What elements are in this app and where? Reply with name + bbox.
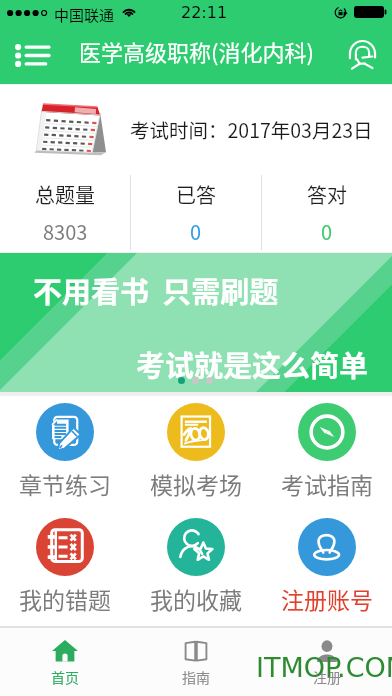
staticText: 我的错题 xyxy=(19,582,111,615)
staticText: 已答 xyxy=(176,180,216,209)
button[interactable]: 考试时间：2017年03月23日 xyxy=(0,85,392,173)
button[interactable]: 注册账号 xyxy=(261,511,392,626)
staticText: 不用看书 只需刷题 xyxy=(33,269,279,311)
staticText: 首页 xyxy=(51,667,79,687)
staticText: 模拟考场 xyxy=(150,467,242,500)
staticText: 我的收藏 xyxy=(150,582,242,615)
button[interactable]: 答对 xyxy=(262,173,392,252)
button[interactable]: 首页 xyxy=(0,628,130,696)
staticText: 总题量 xyxy=(35,180,95,209)
staticText: 答对 xyxy=(307,180,347,209)
staticText: 考试指南 xyxy=(281,467,373,500)
staticText: 8303 xyxy=(43,217,88,246)
staticText: 22:11 xyxy=(181,3,228,22)
button[interactable]: 指南 xyxy=(130,628,261,696)
button[interactable]: 注册 xyxy=(261,628,392,696)
staticText: 医学高级职称(消化内科) xyxy=(79,35,314,67)
button[interactable]: Menu xyxy=(8,31,56,79)
staticText: 中国联通 xyxy=(54,4,115,26)
button[interactable]: 已答 xyxy=(131,173,261,252)
staticText: 考试时间：2017年03月23日 xyxy=(130,115,373,143)
button[interactable]: 我的收藏 xyxy=(130,511,261,626)
button[interactable]: 考试指南 xyxy=(261,396,392,511)
staticText: 注册 xyxy=(313,667,341,687)
button[interactable]: 我的错题 xyxy=(0,511,130,626)
button[interactable]: 总题量 xyxy=(0,173,130,252)
button[interactable]: 章节练习 xyxy=(0,396,130,511)
staticText: 注册账号 xyxy=(281,582,373,615)
staticText: 0 xyxy=(190,217,202,246)
staticText: 考试就是这么简单 xyxy=(136,343,369,385)
staticText: 0 xyxy=(321,217,333,246)
staticText: 指南 xyxy=(182,667,210,687)
staticText: ITMOP.COM xyxy=(256,652,392,683)
staticText: 章节练习 xyxy=(19,467,111,500)
button[interactable]: Customer service xyxy=(338,31,386,79)
button[interactable]: 模拟考场 xyxy=(130,396,261,511)
